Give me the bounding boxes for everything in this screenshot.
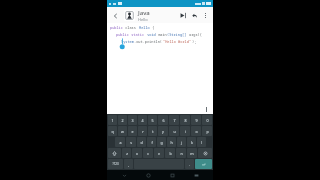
- staticText: z: [126, 151, 128, 156]
- staticText: void: [145, 32, 156, 37]
- button[interactable]: 0: [202, 115, 212, 125]
- button[interactable]: i: [180, 126, 190, 136]
- button[interactable]: ,: [124, 159, 133, 169]
- button[interactable]: a: [115, 137, 125, 147]
- staticText: a: [119, 140, 122, 145]
- button[interactable]: f: [147, 137, 156, 147]
- button[interactable]: Run: [176, 9, 188, 21]
- staticText: s: [130, 140, 132, 145]
- button[interactable]: Java: [138, 9, 176, 22]
- staticText: Java: [138, 9, 150, 17]
- staticText: .: [189, 162, 190, 167]
- button[interactable]: 5: [148, 115, 157, 125]
- button[interactable]: y: [158, 126, 168, 136]
- staticText: k: [191, 140, 193, 145]
- staticText: 7: [173, 118, 176, 123]
- staticText: y: [162, 129, 164, 134]
- staticText: g: [160, 140, 163, 145]
- button[interactable]: t: [148, 126, 157, 136]
- button[interactable]: n: [176, 148, 186, 158]
- button[interactable]: 7: [169, 115, 179, 125]
- button[interactable]: k: [187, 137, 196, 147]
- button[interactable]: Back: [117, 170, 131, 180]
- button[interactable]: Recent apps: [165, 170, 179, 180]
- button[interactable]: 8: [180, 115, 190, 125]
- staticText: 2: [121, 118, 124, 123]
- staticText: System: [121, 39, 134, 44]
- staticText: ,: [128, 162, 129, 167]
- button[interactable]: j: [177, 137, 186, 147]
- button[interactable]: e: [128, 126, 137, 136]
- staticText: 3: [131, 118, 134, 123]
- staticText: 0: [206, 118, 209, 123]
- button[interactable]: u: [169, 126, 179, 136]
- button[interactable]: 4: [138, 115, 147, 125]
- button[interactable]: 3: [128, 115, 137, 125]
- button[interactable]: x: [132, 148, 142, 158]
- staticText: d: [140, 140, 143, 145]
- button[interactable]: Back: [110, 10, 121, 21]
- staticText: e: [131, 129, 134, 134]
- staticText: main: [156, 32, 167, 37]
- staticText: static: [129, 32, 145, 37]
- staticText: w: [121, 129, 124, 134]
- staticText: u: [173, 129, 176, 134]
- button[interactable]: z: [122, 148, 131, 158]
- staticText: class: [123, 25, 139, 30]
- staticText: m: [190, 151, 194, 156]
- button[interactable]: 2: [118, 115, 127, 125]
- staticText: v: [158, 151, 160, 156]
- button[interactable]: g: [157, 137, 166, 147]
- button[interactable]: [107, 105, 213, 114]
- button[interactable]: w: [118, 126, 127, 136]
- button[interactable]: m: [187, 148, 197, 158]
- button[interactable]: q: [108, 126, 117, 136]
- button[interactable]: b: [165, 148, 175, 158]
- button[interactable]: o: [191, 126, 201, 136]
- button[interactable]: v: [154, 148, 164, 158]
- staticText: 6: [162, 118, 165, 123]
- button[interactable]: Backspace: [198, 148, 212, 158]
- button[interactable]: public: [107, 23, 213, 105]
- button[interactable]: .: [185, 159, 194, 169]
- button[interactable]: Enter: [195, 159, 212, 169]
- staticText: (String[]: [167, 32, 189, 37]
- button[interactable]: 1: [108, 115, 117, 125]
- staticText: public: [110, 25, 123, 30]
- button[interactable]: Undo: [188, 9, 200, 21]
- button[interactable]: 9: [191, 115, 201, 125]
- button[interactable]: d: [137, 137, 146, 147]
- staticText: );: [192, 39, 197, 44]
- button[interactable]: p: [202, 126, 212, 136]
- staticText: Hello: [139, 25, 150, 30]
- staticText: n: [180, 151, 183, 156]
- staticText: j: [181, 140, 182, 145]
- button[interactable]: 6: [158, 115, 168, 125]
- staticText: r: [142, 129, 144, 134]
- staticText: 9: [195, 118, 198, 123]
- button[interactable]: c: [143, 148, 153, 158]
- staticText: b: [169, 151, 172, 156]
- staticText: 8: [184, 118, 187, 123]
- staticText: i: [185, 129, 186, 134]
- button[interactable]: s: [126, 137, 136, 147]
- button[interactable]: h: [167, 137, 176, 147]
- button[interactable]: r: [138, 126, 147, 136]
- staticText: Hello: [138, 17, 148, 22]
- button[interactable]: ?123: [108, 159, 123, 169]
- button[interactable]: Shift: [108, 148, 121, 158]
- staticText: .out.println(: [134, 39, 163, 44]
- button[interactable]: More options: [200, 10, 210, 20]
- staticText: f: [151, 140, 153, 145]
- button[interactable]: Java project icon: [124, 10, 135, 21]
- button[interactable]: l: [197, 137, 206, 147]
- staticText: {: [150, 25, 155, 30]
- button[interactable]: Switch keyboard: [189, 170, 203, 180]
- button[interactable]: Home: [141, 170, 155, 180]
- staticText: p: [206, 129, 209, 134]
- staticText: 1: [111, 118, 114, 123]
- staticText: "Hello World": [163, 39, 192, 44]
- staticText: public: [116, 32, 129, 37]
- staticText: o: [195, 129, 198, 134]
